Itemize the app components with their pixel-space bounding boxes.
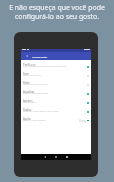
staticText: Idioma usado no app [23,82,48,85]
staticText: Por grupos [23,100,37,103]
button[interactable]: Voltar [42,154,48,160]
staticText: Mostrar mais dados nas linhas [23,109,59,112]
button[interactable]: Início [53,154,59,160]
staticText: Dados [23,108,32,112]
button[interactable]: Ajuda [21,116,91,125]
staticText: Crie comportamentos automatizados [23,64,67,67]
button[interactable]: Ajustes [21,98,91,107]
button[interactable]: Rede [21,80,91,89]
button[interactable]: Recentes [64,154,70,160]
button[interactable]: Som [21,71,91,80]
staticText: Atualizar [23,90,35,94]
staticText: Perfil uso [23,63,36,67]
staticText: Configuração [32,55,48,58]
staticText: Som [23,72,29,76]
button[interactable]: Perfil uso [21,62,91,71]
staticText: Claro ou escuro [23,73,42,76]
staticText: Buscar versões novas [23,91,49,94]
staticText: Ajuda [23,117,31,121]
staticText: Rede [23,81,30,85]
button[interactable]: Atualizar [21,89,91,98]
button[interactable]: Dados [21,107,91,116]
staticText: 2 mg [79,119,86,123]
staticText: Salvar cópia segura [23,118,46,121]
button[interactable]: Voltar [25,54,29,58]
staticText: E não esqueça que você pode configurá-lo… [0,3,114,21]
staticText: Ajustes [23,99,33,103]
